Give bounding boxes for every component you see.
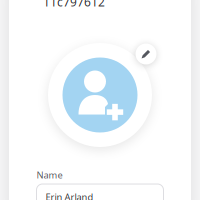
staticText: Erin Arland <box>45 191 93 200</box>
button[interactable]: Edit photo <box>133 41 159 67</box>
staticText: 11c797612 <box>43 0 105 10</box>
staticText: Name <box>36 169 62 181</box>
